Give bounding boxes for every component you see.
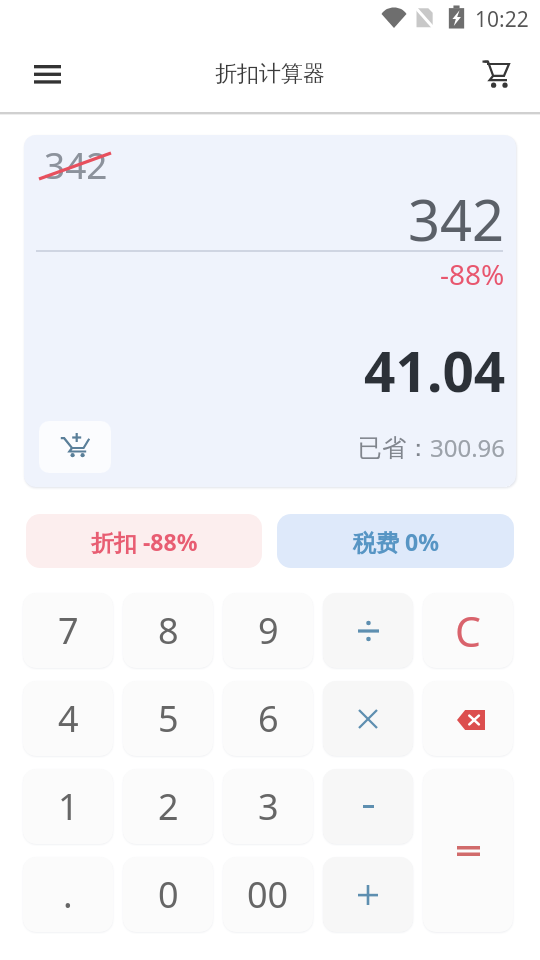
button[interactable]: 税费 0% xyxy=(277,514,514,568)
button[interactable]: 00 xyxy=(223,857,313,932)
button[interactable]: . xyxy=(23,857,113,932)
staticText: 7 xyxy=(58,606,79,655)
staticText: 300.96 xyxy=(430,431,506,464)
staticText: 折扣 -88% xyxy=(91,526,198,557)
staticText: 4 xyxy=(58,694,79,743)
staticText: 41.04 xyxy=(364,333,506,408)
button[interactable] xyxy=(323,681,413,756)
button[interactable] xyxy=(323,593,413,668)
button[interactable]: 折扣 -88% xyxy=(26,514,262,568)
staticText: C xyxy=(455,603,481,659)
button[interactable] xyxy=(423,769,513,932)
button[interactable]: Cart xyxy=(473,50,521,98)
staticText: 342 xyxy=(44,139,108,189)
button[interactable]: 9 xyxy=(223,593,313,668)
staticText: 折扣计算器 xyxy=(215,60,325,88)
staticText: 342 xyxy=(408,181,505,257)
button[interactable]: Add to cart xyxy=(39,421,111,473)
staticText: 0 xyxy=(158,870,179,919)
button[interactable] xyxy=(323,857,413,932)
staticText: 3 xyxy=(258,782,279,831)
button[interactable] xyxy=(323,769,413,844)
staticText: 税费 0% xyxy=(353,526,439,557)
staticText: 5 xyxy=(158,694,179,743)
button[interactable]: 3 xyxy=(223,769,313,844)
staticText: 2 xyxy=(158,782,179,831)
button[interactable]: 2 xyxy=(123,769,213,844)
staticText: -88% xyxy=(440,255,505,293)
button[interactable]: 8 xyxy=(123,593,213,668)
button[interactable]: 6 xyxy=(223,681,313,756)
button[interactable]: 7 xyxy=(23,593,113,668)
button[interactable] xyxy=(423,681,513,756)
staticText: 8 xyxy=(158,606,179,655)
button[interactable]: C xyxy=(423,593,513,668)
staticText: 1 xyxy=(58,782,79,831)
button[interactable]: 1 xyxy=(23,769,113,844)
button[interactable]: 0 xyxy=(123,857,213,932)
button[interactable]: Menu xyxy=(23,50,71,98)
staticText: 已省： xyxy=(358,433,430,463)
button[interactable]: 4 xyxy=(23,681,113,756)
staticText: . xyxy=(63,870,73,919)
button[interactable]: 5 xyxy=(123,681,213,756)
staticText: 6 xyxy=(258,694,279,743)
staticText: 10:22 xyxy=(475,5,529,34)
staticText: 00 xyxy=(247,870,289,919)
staticText: 9 xyxy=(258,606,279,655)
